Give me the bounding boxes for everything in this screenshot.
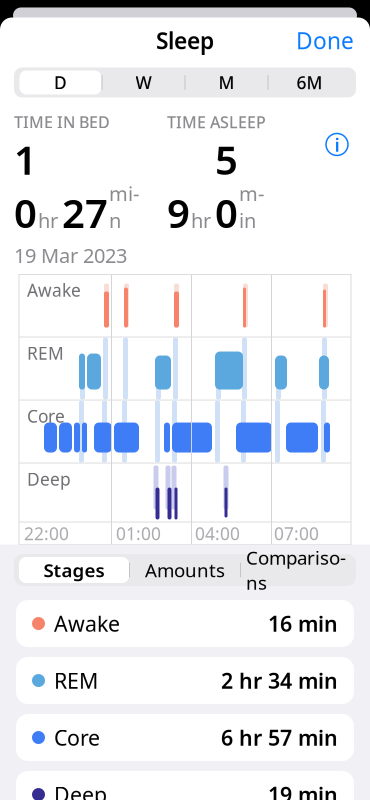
button[interactable]: W <box>102 70 184 94</box>
button[interactable]: Comparisons <box>241 557 351 583</box>
button[interactable]: 6M <box>268 70 350 94</box>
staticText: TIME IN BED <box>14 111 110 133</box>
staticText: D <box>54 71 67 94</box>
button[interactable]: Done <box>280 17 370 63</box>
staticText: 19 Mar 2023 <box>14 242 127 269</box>
staticText: Sleep <box>156 25 214 55</box>
staticText: 01:00 <box>116 522 161 545</box>
staticText: min <box>239 180 264 233</box>
button[interactable]: Core <box>16 714 354 771</box>
button[interactable]: Amounts <box>130 557 240 583</box>
staticText: 9 <box>167 186 190 239</box>
button[interactable]: Stages <box>19 557 129 583</box>
button[interactable]: Awake <box>16 600 354 657</box>
staticText: Core <box>54 723 100 752</box>
staticText: Amounts <box>145 558 225 582</box>
staticText: 50 <box>215 133 238 239</box>
button[interactable]: M <box>185 70 267 94</box>
staticText: Deep <box>54 780 107 800</box>
button[interactable]: About sleep data <box>318 125 356 163</box>
staticText: i <box>334 132 339 157</box>
staticText: 6M <box>296 71 322 94</box>
staticText: 10 <box>14 133 37 239</box>
staticText: W <box>135 71 151 94</box>
staticText: min <box>109 180 139 233</box>
button[interactable]: D <box>19 70 101 94</box>
staticText: 2 hr 34 min <box>221 666 338 695</box>
staticText: Comparisons <box>246 545 346 595</box>
button[interactable]: REM <box>16 657 354 714</box>
staticText: M <box>218 71 234 94</box>
staticText: 19 min <box>268 780 338 800</box>
staticText: 07:00 <box>274 522 319 545</box>
staticText: 22:00 <box>24 522 69 545</box>
staticText: 04:00 <box>195 522 240 545</box>
staticText: hr <box>191 207 211 233</box>
staticText: Core <box>27 404 65 427</box>
staticText: Stages <box>43 558 104 582</box>
staticText: Awake <box>54 609 120 638</box>
staticText: Done <box>296 25 354 55</box>
staticText: REM <box>27 341 64 364</box>
staticText: REM <box>54 666 98 695</box>
staticText: Awake <box>27 278 81 301</box>
staticText: 16 min <box>268 609 338 638</box>
staticText: TIME ASLEEP <box>167 111 266 133</box>
staticText: hr <box>38 207 58 233</box>
staticText: 27 <box>62 186 108 239</box>
button[interactable]: Deep <box>16 771 354 800</box>
staticText: 6 hr 57 min <box>221 723 338 752</box>
staticText: Deep <box>27 467 71 490</box>
